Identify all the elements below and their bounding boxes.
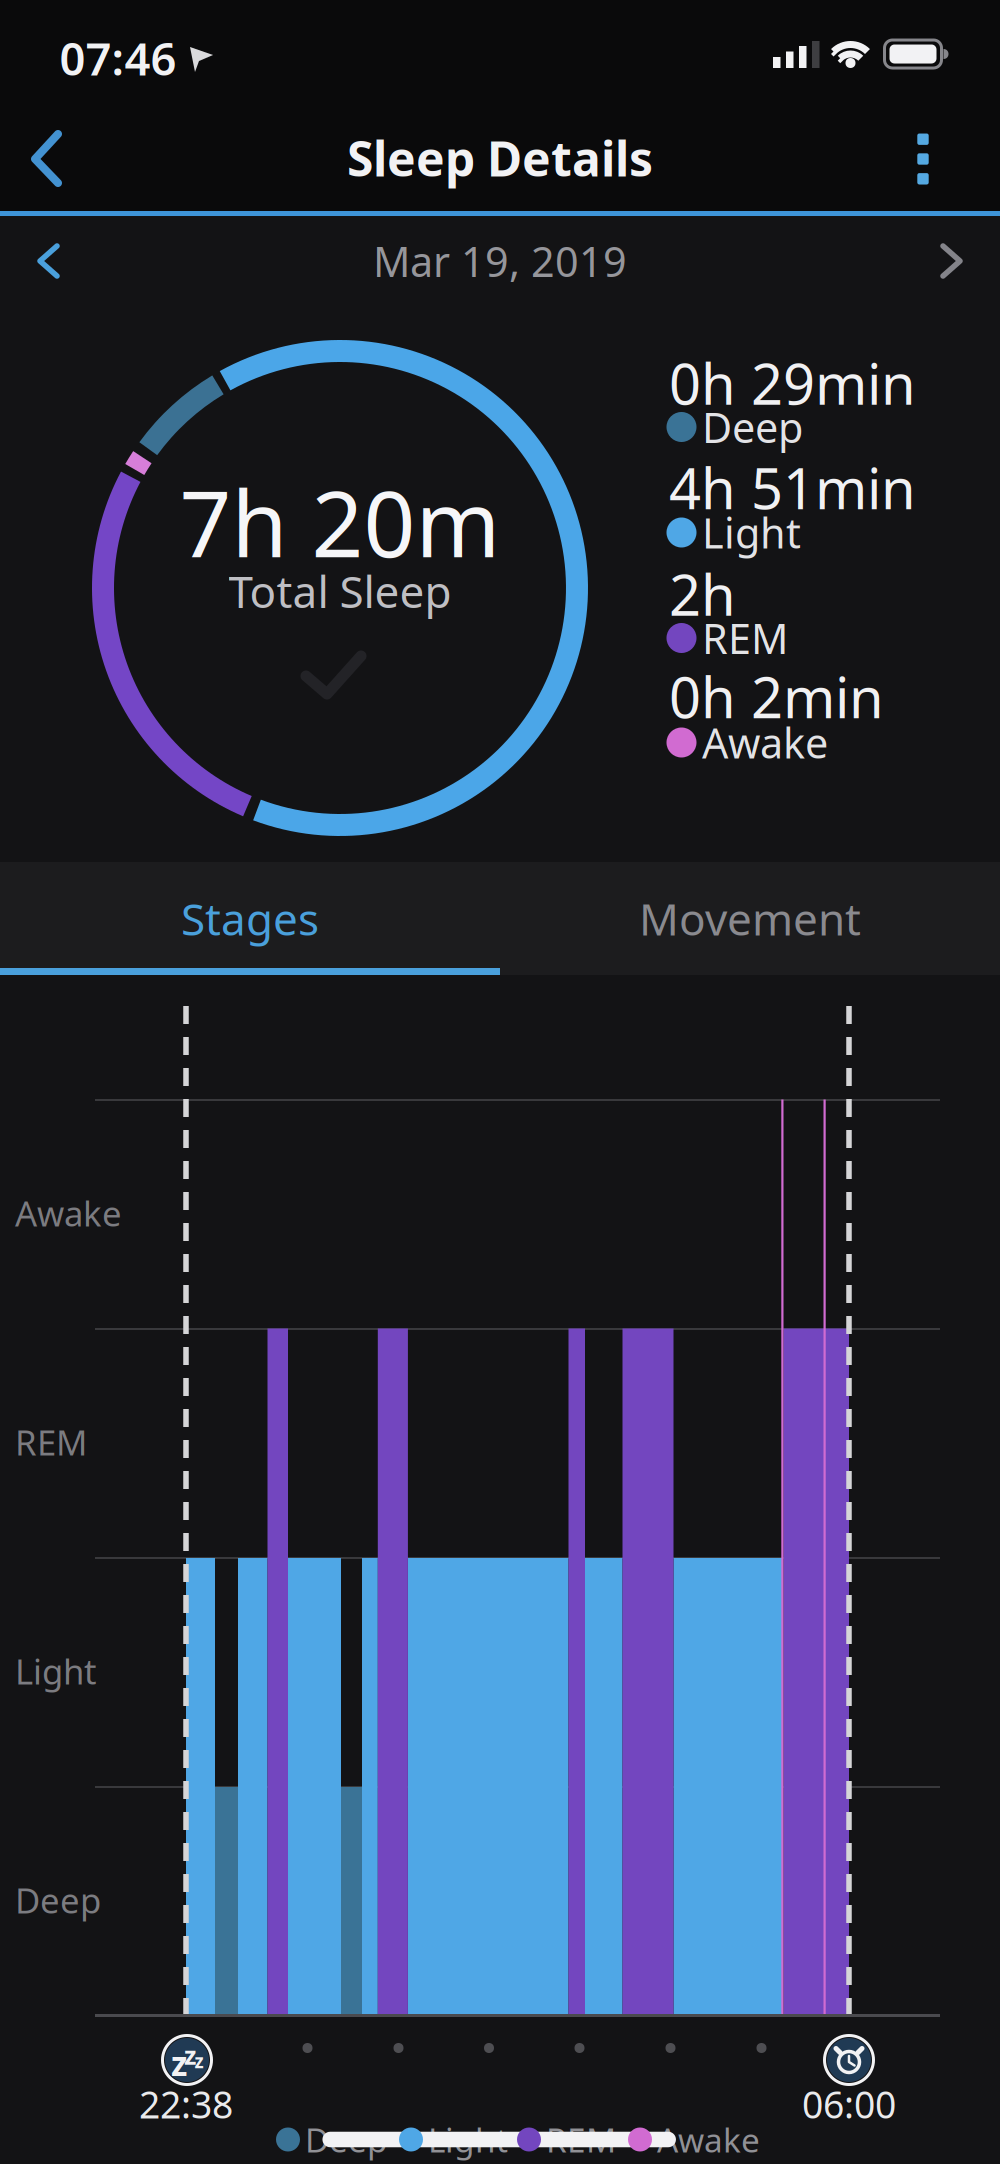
- staticText: REM: [546, 2117, 616, 2162]
- staticText: Light: [15, 1648, 97, 1694]
- staticText: Mar 19, 2019: [373, 234, 627, 288]
- staticText: Awake: [657, 2117, 760, 2162]
- staticText: 2h: [669, 557, 736, 631]
- staticText: z: [171, 2041, 187, 2085]
- staticText: z: [194, 2049, 203, 2073]
- staticText: REM: [15, 1419, 87, 1465]
- staticText: 0h 29min: [669, 346, 916, 420]
- staticText: z: [184, 2038, 196, 2072]
- staticText: Light: [428, 2117, 508, 2162]
- staticText: 0h 2min: [669, 659, 884, 734]
- staticText: REM: [702, 611, 788, 665]
- staticText: Deep: [305, 2117, 388, 2162]
- staticText: Light: [702, 505, 801, 560]
- staticText: Total Sleep: [228, 562, 451, 620]
- staticText: 22:38: [139, 2079, 233, 2129]
- staticText: Awake: [15, 1190, 122, 1236]
- staticText: 4h 51min: [669, 450, 916, 525]
- staticText: 7h 20m: [179, 462, 500, 582]
- button[interactable]: [893, 119, 953, 199]
- button[interactable]: [26, 127, 70, 191]
- staticText: Deep: [702, 400, 803, 454]
- staticText: 06:00: [802, 2079, 896, 2129]
- staticText: Awake: [702, 715, 828, 770]
- staticText: Sleep Details: [347, 126, 653, 190]
- button[interactable]: Movement: [500, 862, 1000, 975]
- staticText: 07:46: [59, 28, 176, 88]
- staticText: Stages: [181, 889, 319, 948]
- staticText: Movement: [639, 889, 861, 948]
- button[interactable]: Stages: [0, 862, 500, 975]
- staticText: Deep: [15, 1877, 101, 1923]
- button[interactable]: [934, 239, 968, 283]
- button[interactable]: [32, 239, 66, 283]
